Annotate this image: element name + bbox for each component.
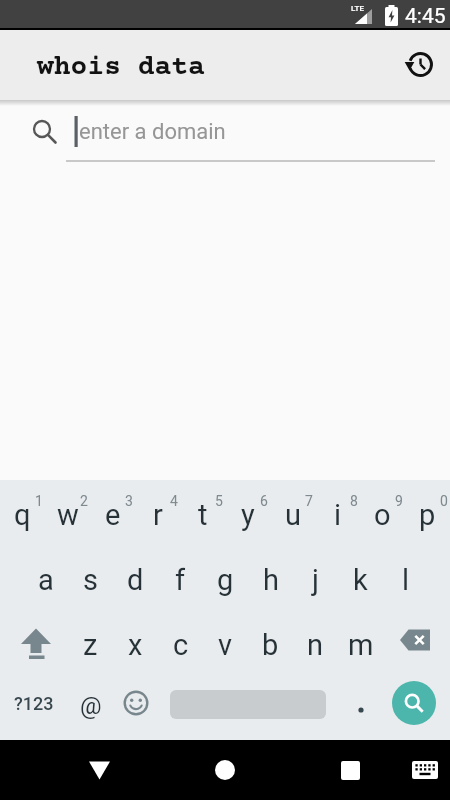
button[interactable]: p	[405, 480, 450, 545]
button[interactable]	[383, 610, 450, 675]
button[interactable]	[405, 51, 433, 79]
staticText: whois data	[37, 52, 205, 83]
button[interactable]	[392, 681, 436, 725]
staticText: 4	[170, 493, 178, 509]
staticText: n	[307, 628, 324, 662]
staticText: ?123	[14, 693, 54, 714]
button[interactable]	[0, 610, 68, 675]
button[interactable]: @	[68, 675, 113, 740]
button[interactable]	[338, 675, 383, 740]
button[interactable]	[75, 755, 125, 785]
button[interactable]: z	[68, 610, 113, 675]
button[interactable]: k	[338, 545, 383, 610]
staticText: z	[83, 628, 98, 662]
staticText: l	[402, 563, 410, 597]
button[interactable]: i	[315, 480, 360, 545]
button[interactable]: t	[180, 480, 225, 545]
staticText: enter a domain	[79, 119, 226, 145]
staticText: q	[14, 498, 31, 532]
button[interactable]: r	[135, 480, 180, 545]
staticText: x	[128, 628, 143, 662]
button[interactable]: f	[158, 545, 203, 610]
staticText: r	[153, 498, 163, 532]
staticText: j	[312, 563, 319, 597]
button[interactable]	[325, 755, 375, 785]
button[interactable]	[200, 755, 250, 785]
staticText: a	[38, 563, 54, 597]
button[interactable]: d	[113, 545, 158, 610]
staticText: i	[334, 498, 342, 532]
staticText: o	[374, 498, 391, 532]
button[interactable]: j	[293, 545, 338, 610]
staticText: w	[57, 498, 79, 532]
button[interactable]: n	[293, 610, 338, 675]
staticText: @	[80, 692, 102, 720]
button[interactable]: x	[113, 610, 158, 675]
button[interactable]	[113, 675, 158, 740]
button[interactable]	[405, 755, 445, 785]
button[interactable]: v	[203, 610, 248, 675]
staticText: 5	[215, 493, 223, 509]
staticText: LTE	[351, 4, 364, 13]
staticText: v	[218, 628, 233, 662]
staticText: 6	[260, 493, 268, 509]
button[interactable]: enter a domain	[0, 100, 450, 480]
button[interactable]: l	[383, 545, 428, 610]
button[interactable]: q	[0, 480, 45, 545]
staticText: e	[105, 498, 121, 532]
button[interactable]: c	[158, 610, 203, 675]
button[interactable]: y	[225, 480, 270, 545]
button[interactable]	[158, 675, 338, 740]
staticText: b	[262, 628, 279, 662]
button[interactable]: o	[360, 480, 405, 545]
staticText: 1	[35, 493, 43, 509]
staticText: t	[198, 498, 208, 532]
button[interactable]: ?123	[0, 675, 68, 740]
button[interactable]: s	[68, 545, 113, 610]
staticText: 8	[350, 493, 358, 509]
staticText: 7	[305, 493, 313, 509]
staticText: c	[173, 628, 189, 662]
button[interactable]: g	[203, 545, 248, 610]
staticText: u	[285, 498, 301, 532]
staticText: 4:45	[405, 4, 446, 29]
staticText: k	[353, 563, 368, 597]
staticText: h	[263, 563, 279, 597]
button[interactable]: h	[248, 545, 293, 610]
button[interactable]: a	[23, 545, 68, 610]
button[interactable]: e	[90, 480, 135, 545]
staticText: s	[83, 563, 98, 597]
button[interactable]: b	[248, 610, 293, 675]
staticText: p	[419, 498, 436, 532]
staticText: 0	[440, 493, 448, 509]
staticText: y	[241, 498, 255, 532]
button[interactable]: u	[270, 480, 315, 545]
staticText: m	[348, 628, 374, 662]
staticText: f	[175, 563, 186, 597]
staticText: 9	[395, 493, 403, 509]
button[interactable]: m	[338, 610, 383, 675]
staticText: g	[217, 563, 234, 597]
staticText: d	[127, 563, 144, 597]
button[interactable]: w	[45, 480, 90, 545]
staticText: 2	[80, 493, 88, 509]
staticText: 3	[125, 493, 133, 509]
